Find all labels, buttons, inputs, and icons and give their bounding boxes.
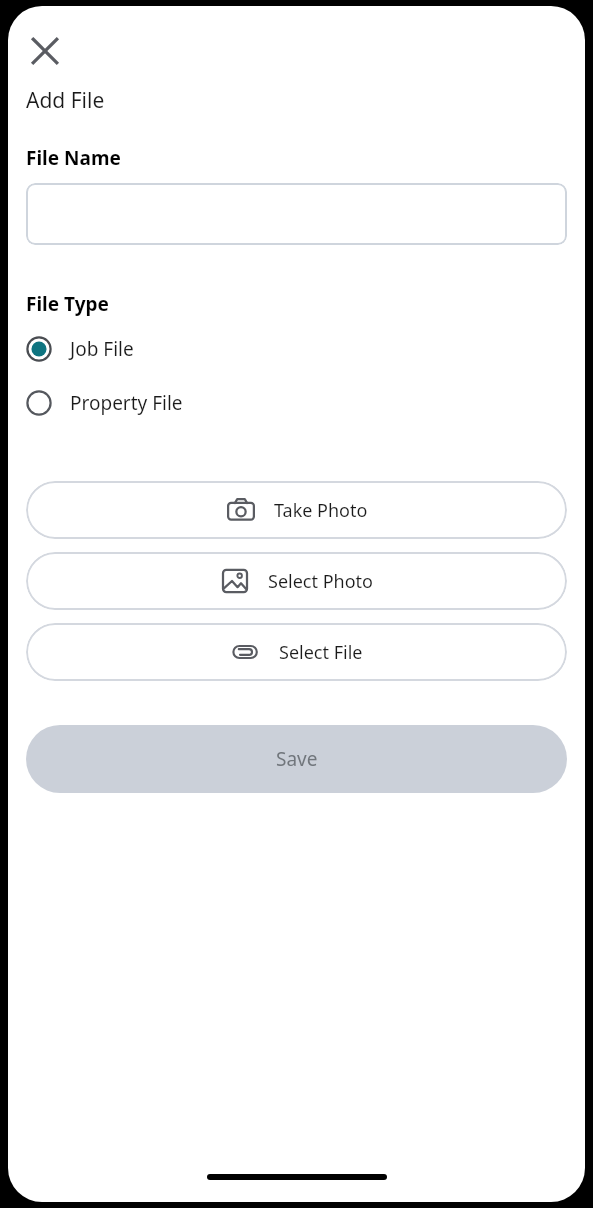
staticText: Save	[276, 746, 318, 772]
button[interactable]: Select File	[26, 623, 567, 681]
staticText: Select Photo	[268, 569, 373, 594]
staticText: Take Photo	[274, 498, 368, 523]
staticText: File Name	[26, 145, 121, 171]
button[interactable]: Close	[18, 24, 72, 78]
staticText: Select File	[279, 640, 363, 665]
button[interactable]: Job File	[8, 327, 585, 371]
staticText: Job File	[70, 336, 134, 362]
staticText: Add File	[26, 86, 105, 115]
button[interactable]: Property File	[8, 381, 585, 425]
button[interactable]: Select Photo	[26, 552, 567, 610]
staticText: File Type	[26, 291, 109, 317]
staticText: Property File	[70, 390, 183, 416]
button[interactable]: Save	[26, 725, 567, 793]
button[interactable]: Take Photo	[26, 481, 567, 539]
button[interactable]: File name input	[26, 183, 567, 245]
